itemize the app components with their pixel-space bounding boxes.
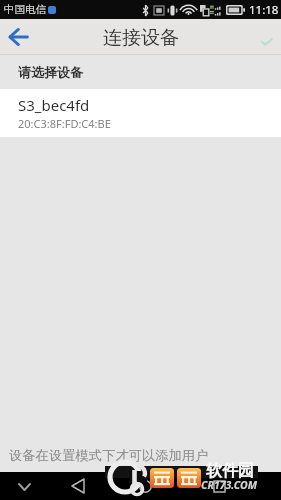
button[interactable]: Hide keyboard: [0, 472, 48, 500]
button[interactable]: Confirm: [251, 19, 281, 55]
button[interactable]: Home: [115, 472, 175, 500]
staticText: 中国电信: [4, 3, 46, 16]
staticText: 连接设备: [103, 26, 179, 50]
button[interactable]: Back: [48, 472, 108, 500]
staticText: 20:C3:8F:FD:C4:BE: [18, 116, 111, 131]
staticText: S3_bec4fd: [18, 95, 90, 115]
staticText: CR173.COM: [201, 478, 257, 492]
staticText: 11:18: [249, 2, 279, 18]
staticText: 软件园: [206, 461, 254, 481]
button[interactable]: Back: [0, 19, 36, 55]
button[interactable]: S3_bec4fd: [0, 89, 281, 137]
button[interactable]: Recent apps: [189, 472, 249, 500]
staticText: 请选择设备: [18, 64, 83, 80]
staticText: 设备在设置模式下才可以添加用户: [9, 447, 209, 464]
